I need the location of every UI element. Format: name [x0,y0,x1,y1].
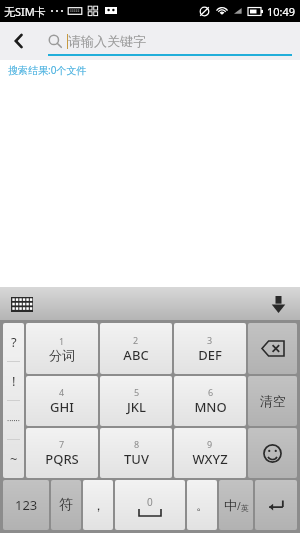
button[interactable]: Hide keyboard [266,292,290,316]
staticText: 请输入关键字 [68,33,146,49]
button[interactable]: 请输入关键字 [48,26,292,56]
staticText: 。 [196,497,209,513]
button[interactable]: Backspace [248,323,297,374]
staticText: TUV [124,450,149,468]
staticText: 2 [133,334,139,346]
button[interactable]: 清空 [248,376,297,426]
button[interactable]: 3 [174,323,246,374]
staticText: 9 [207,438,213,450]
staticText: 10:49 [267,4,296,19]
staticText: ~ [10,450,18,468]
button[interactable]: 。 [187,480,217,530]
staticText: 中 [224,497,237,513]
button[interactable]: 7 [26,428,98,478]
button[interactable]: 5 [100,376,172,426]
staticText: 清空 [260,393,286,409]
button[interactable]: 中 [219,480,253,530]
staticText: 8 [134,438,140,450]
button[interactable]: 8 [100,428,172,478]
staticText: 分词 [49,347,75,363]
button[interactable]: 4 [26,376,98,426]
staticText: ABC [123,346,149,364]
staticText: PQRS [45,450,79,468]
staticText: 5 [134,386,140,398]
button[interactable]: 123 [3,480,49,530]
staticText: ， [92,497,105,513]
staticText: ······ [7,415,20,426]
staticText: 6 [208,386,214,398]
staticText: 4 [59,386,65,398]
button[interactable]: 6 [174,376,246,426]
staticText: 7 [59,438,65,450]
button[interactable]: Keyboard layout [9,291,35,317]
button[interactable]: Space [115,480,185,530]
button[interactable]: 符 [51,480,81,530]
staticText: MNO [194,398,227,416]
staticText: WXYZ [192,450,228,468]
staticText: 0 [147,495,153,509]
staticText: GHI [50,398,74,416]
button[interactable]: 2 [100,323,172,374]
button[interactable]: 1 [26,323,98,374]
staticText: 无SIM卡 [4,4,46,19]
staticText: 符 [59,496,73,514]
button[interactable]: 9 [174,428,246,478]
staticText: 英 [241,503,249,513]
staticText: 1 [59,335,65,347]
staticText: 搜索结果:0个文件 [8,63,87,77]
button[interactable]: ， [83,480,113,530]
button[interactable]: Enter [255,480,297,530]
staticText: ? [11,333,17,351]
button[interactable]: Back [0,22,38,60]
staticText: JKL [127,398,146,416]
staticText: 123 [15,496,38,514]
staticText: DEF [198,346,222,364]
button[interactable]: ? [3,323,24,478]
staticText: 3 [207,334,213,346]
staticText: ! [12,372,16,390]
button[interactable]: Emoji [248,428,297,478]
staticText: / [237,499,241,513]
